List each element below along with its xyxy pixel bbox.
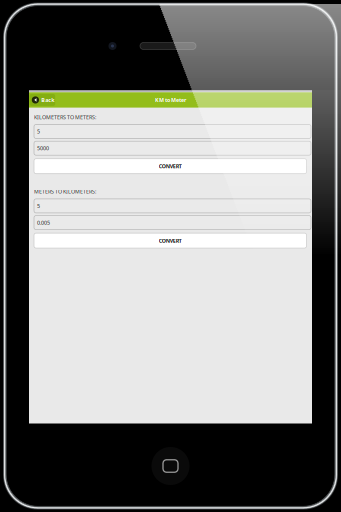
staticText: CONVERT (159, 237, 182, 244)
staticText: KILOMETERS TO METERS: (34, 114, 96, 121)
staticText: 0.005 (37, 219, 50, 226)
staticText: METERS TO KILOMETERS: (34, 188, 96, 195)
staticText: 5000 (37, 145, 49, 152)
button[interactable]: Back (29, 94, 55, 106)
staticText: 5 (37, 128, 40, 135)
staticText: KM to Meter (155, 96, 186, 103)
staticText: Back (41, 96, 54, 103)
button[interactable]: CONVERT (34, 159, 306, 174)
button[interactable]: CONVERT (34, 233, 306, 248)
staticText: 5 (37, 202, 40, 209)
staticText: CONVERT (159, 163, 182, 170)
